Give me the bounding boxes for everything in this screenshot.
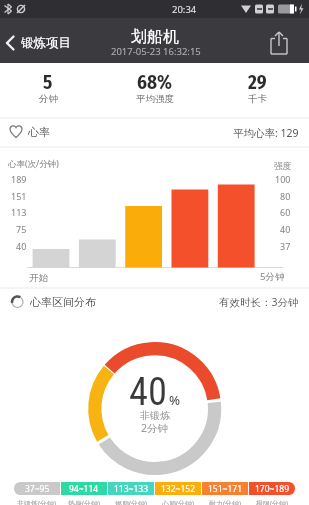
staticText: 5 [43,71,53,94]
button[interactable] [0,18,100,63]
button[interactable]: 170~189 [249,482,295,495]
staticText: 有效时长：3分钟 [219,295,299,309]
button[interactable]: 94~114 [61,482,107,495]
staticText: 60 [280,206,291,218]
staticText: 132~152 [161,483,196,495]
staticText: 极限(分钟) [256,499,289,505]
staticText: 心率(次/分钟) [8,158,59,170]
staticText: 平均心率: 129 [233,126,299,140]
staticText: 强度 [274,161,291,172]
staticText: 燃脂(分钟) [115,499,148,505]
staticText: 锻炼项目 [21,35,71,51]
staticText: 热身(分钟) [68,499,101,505]
staticText: 划船机 [131,27,179,47]
staticText: 37 [280,240,291,252]
staticText: 非锻炼(分钟) [17,499,57,505]
staticText: 75 [16,223,27,235]
button[interactable]: 151~171 [202,482,248,495]
button[interactable]: 37~95 [14,482,60,495]
staticText: 100 [275,173,291,185]
staticText: % [169,391,181,409]
staticText: 170~189 [255,483,290,495]
staticText: 189 [11,173,27,185]
staticText: 心率 [28,125,50,139]
staticText: 平均强度 [136,93,174,105]
staticText: 耐力(分钟) [209,499,242,505]
button[interactable]: 113~133 [108,482,154,495]
staticText: 29 [248,71,267,94]
staticText: 94~114 [69,483,99,495]
staticText: 分钟 [39,93,58,105]
staticText: 113 [11,206,27,218]
button[interactable]: 132~152 [155,482,201,495]
staticText: 113~133 [114,483,149,495]
staticText: 40 [129,369,168,414]
staticText: 37~95 [25,483,50,495]
staticText: 151 [11,190,27,202]
staticText: 68% [137,71,172,94]
staticText: 心率区间分布 [30,295,96,309]
staticText: 80 [280,190,291,202]
staticText: 20:34 [172,3,197,16]
staticText: 开始 [29,272,48,284]
staticText: 非锻炼 [140,409,170,422]
staticText: 40 [280,223,291,235]
staticText: 心肺(分钟) [162,499,195,505]
staticText: 40 [16,240,27,252]
staticText: 151~171 [208,483,243,495]
staticText: 5分钟 [260,270,285,283]
staticText: 2分钟 [141,421,169,435]
staticText: 千卡 [248,93,267,105]
button[interactable] [262,26,298,60]
staticText: 2017-05-23 16:32:15 [111,45,201,58]
